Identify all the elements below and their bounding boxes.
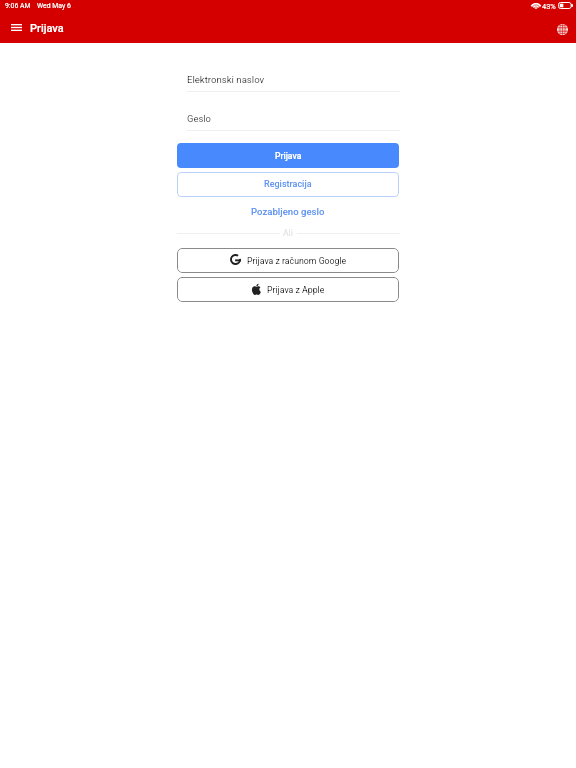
staticText: Wed May 6 [37, 2, 71, 10]
staticText: Prijava [30, 22, 64, 35]
staticText: Prijava z Apple [267, 285, 325, 295]
button[interactable]: Registracija [177, 172, 399, 197]
button[interactable]: Elektronski naslov [187, 69, 400, 90]
button[interactable]: Prijava [177, 143, 399, 168]
staticText: Elektronski naslov [187, 74, 265, 85]
staticText: Ali [283, 228, 293, 238]
staticText: Prijava z računom Google [247, 256, 347, 266]
staticText: 9:06 AM [5, 2, 31, 10]
staticText: Pozabljeno geslo [251, 206, 325, 217]
button[interactable]: Open navigation menu [3, 15, 29, 41]
staticText: Registracija [264, 179, 312, 190]
staticText: 43% [542, 2, 556, 11]
staticText: Geslo [187, 113, 211, 124]
staticText: Prijava [275, 151, 302, 161]
button[interactable]: Prijava z Apple [177, 277, 399, 302]
button[interactable]: Pozabljeno geslo [177, 203, 399, 220]
button[interactable]: Prijava z računom Google [177, 248, 399, 273]
button[interactable]: Change language [548, 15, 576, 43]
button[interactable]: Geslo [187, 108, 400, 129]
